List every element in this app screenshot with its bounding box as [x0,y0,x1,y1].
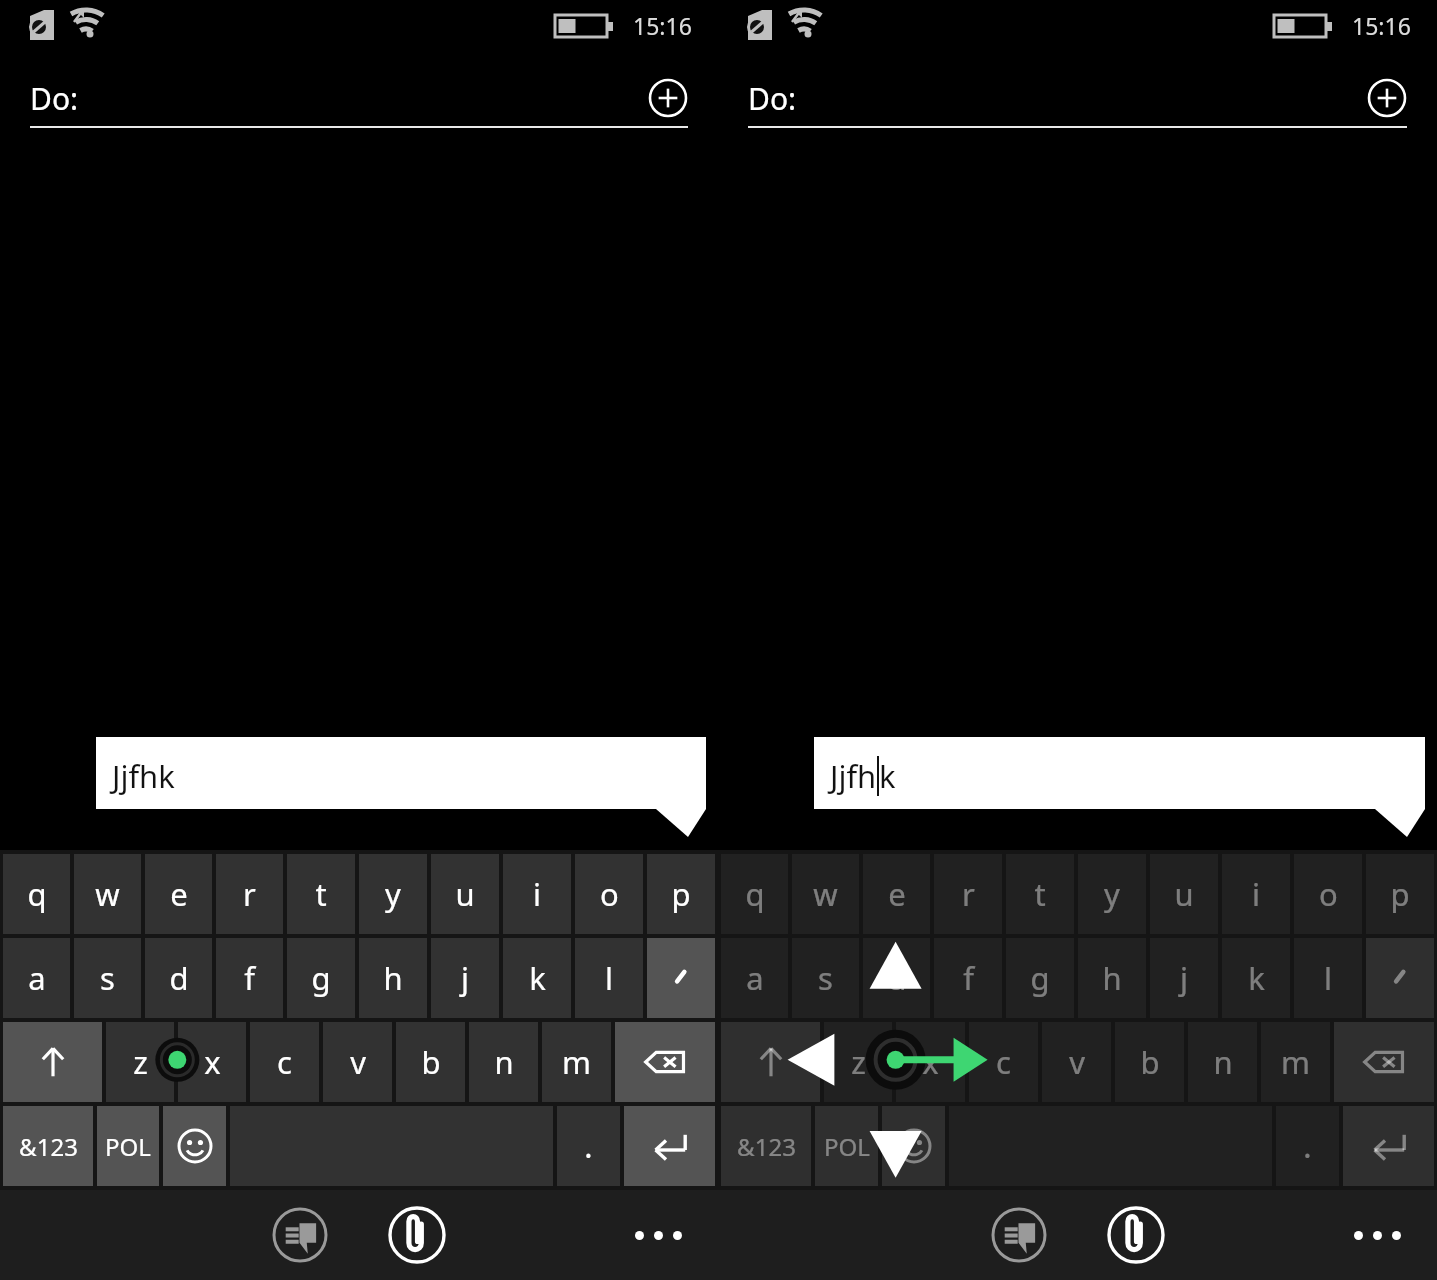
button[interactable]: t [287,854,355,934]
button[interactable]: p [647,854,715,934]
button[interactable]: x [178,1022,246,1102]
button[interactable]: m [542,1022,611,1102]
button[interactable]: d [863,938,930,1018]
button[interactable]: l [575,938,643,1018]
button[interactable]: u [431,854,499,934]
button[interactable]: p [1366,854,1434,934]
button[interactable]: j [431,938,499,1018]
staticText: l [605,957,613,999]
button[interactable]: c [250,1022,319,1102]
staticText: p [1390,873,1410,915]
button[interactable]: emoji [882,1106,945,1186]
button[interactable] [647,938,715,1018]
staticText: Do: [30,78,79,119]
staticText: i [1252,873,1260,915]
staticText: o [600,873,619,915]
button[interactable]: More options [1354,1231,1401,1240]
button[interactable]: r [216,854,283,934]
button[interactable]: &123 [3,1106,93,1186]
button[interactable]: POL [97,1106,159,1186]
staticText: t [315,873,327,915]
button[interactable]: back [615,1022,715,1102]
staticText: u [455,873,475,915]
staticText: a [746,957,764,999]
button[interactable]: e [863,854,930,934]
button[interactable]: Attach [1105,1204,1167,1266]
button[interactable]: b [396,1022,465,1102]
button[interactable]: q [721,854,788,934]
button[interactable]: k [1222,938,1290,1018]
button[interactable]: Conversation [270,1205,330,1265]
button[interactable]: enter [1343,1106,1434,1186]
button[interactable]: shift [721,1022,820,1102]
staticText: m [1281,1041,1310,1083]
button[interactable]: Conversation [989,1205,1049,1265]
staticText: Jjfh [830,755,877,797]
button[interactable]: Add recipient [648,78,688,118]
button[interactable]: l [1294,938,1362,1018]
button[interactable]: Attach [386,1204,448,1266]
button[interactable]: g [287,938,355,1018]
button[interactable]: o [1294,854,1362,934]
button[interactable]: emoji [163,1106,226,1186]
button[interactable]: s [792,938,859,1018]
button[interactable]: n [1188,1022,1257,1102]
button[interactable]: n [469,1022,538,1102]
button[interactable]: y [359,854,427,934]
button[interactable]: a [3,938,70,1018]
staticText: POL [824,1130,870,1163]
button[interactable]: y [1078,854,1146,934]
button[interactable]: u [1150,854,1218,934]
button[interactable]: o [575,854,643,934]
button[interactable]: r [934,854,1002,934]
button[interactable]: w [792,854,859,934]
button[interactable]: &123 [721,1106,811,1186]
button[interactable]: k [503,938,571,1018]
button[interactable] [1366,938,1434,1018]
staticText: w [95,873,120,915]
button[interactable]: Add recipient [1367,78,1407,118]
button[interactable]: f [216,938,283,1018]
button[interactable]: x [896,1022,965,1102]
button[interactable]: m [1261,1022,1330,1102]
button[interactable]: g [1006,938,1074,1018]
button[interactable]: z [106,1022,174,1102]
button[interactable]: enter [624,1106,715,1186]
button[interactable]: w [74,854,141,934]
button[interactable]: d [145,938,212,1018]
staticText: y [385,873,401,915]
button[interactable]: back [1334,1022,1434,1102]
button[interactable]: f [934,938,1002,1018]
button[interactable]: Do: [748,76,1407,120]
staticText: j [1180,957,1188,999]
button[interactable]: v [1042,1022,1111,1102]
staticText: n [494,1041,514,1083]
staticText: s [100,957,115,999]
staticText: c [277,1041,292,1083]
button[interactable]: Do: [30,76,688,120]
staticText: g [1030,957,1050,999]
button[interactable]: e [145,854,212,934]
button[interactable]: j [1150,938,1218,1018]
button[interactable]: . [557,1106,620,1186]
button[interactable]: POL [815,1106,878,1186]
button[interactable]: s [74,938,141,1018]
button[interactable]: i [503,854,571,934]
button[interactable]: c [969,1022,1038,1102]
staticText: f [244,957,255,999]
button[interactable]: q [3,854,70,934]
button[interactable]: . [1276,1106,1339,1186]
button[interactable]: t [1006,854,1074,934]
button[interactable]: More options [635,1231,682,1240]
button[interactable]: i [1222,854,1290,934]
button[interactable]: z [824,1022,892,1102]
button[interactable]: a [721,938,788,1018]
button[interactable]: shift [3,1022,102,1102]
button[interactable]: v [323,1022,392,1102]
button[interactable]: h [1078,938,1146,1018]
button[interactable]: h [359,938,427,1018]
button[interactable]: b [1115,1022,1184,1102]
staticText: u [1174,873,1194,915]
